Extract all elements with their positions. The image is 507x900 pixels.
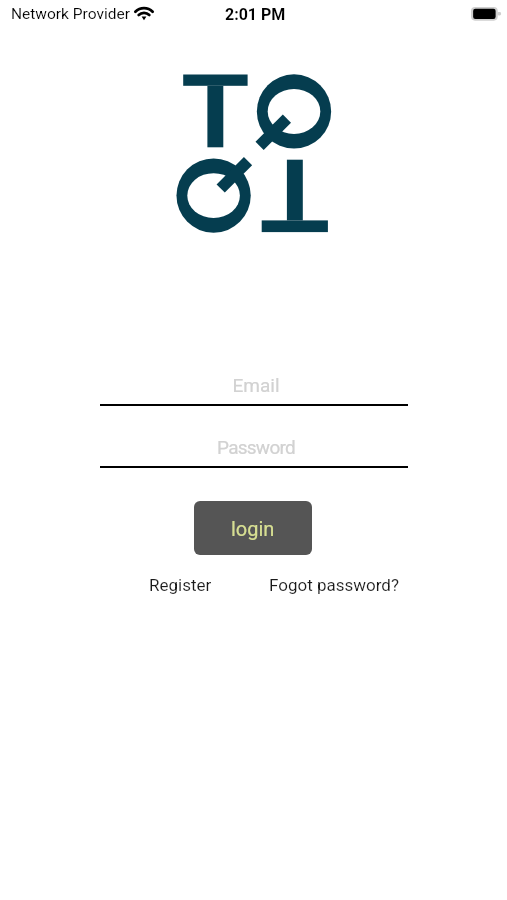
staticText: Email [102, 374, 410, 396]
button[interactable]: Email [100, 368, 408, 406]
staticText: 2:01 PM [225, 5, 286, 24]
button[interactable]: Fogot password? [261, 567, 407, 603]
staticText: login [231, 517, 275, 540]
other: Battery full [471, 7, 501, 21]
staticText: Fogot password? [269, 575, 399, 595]
other: TOOT logo [174, 73, 335, 234]
staticText: Password [102, 436, 410, 458]
other: Wi-Fi signal [135, 7, 153, 21]
button[interactable]: Register [141, 567, 220, 603]
button[interactable]: Password [100, 430, 408, 468]
staticText: Network Provider [11, 5, 130, 23]
staticText: Register [149, 575, 212, 595]
button[interactable]: login [194, 501, 312, 555]
